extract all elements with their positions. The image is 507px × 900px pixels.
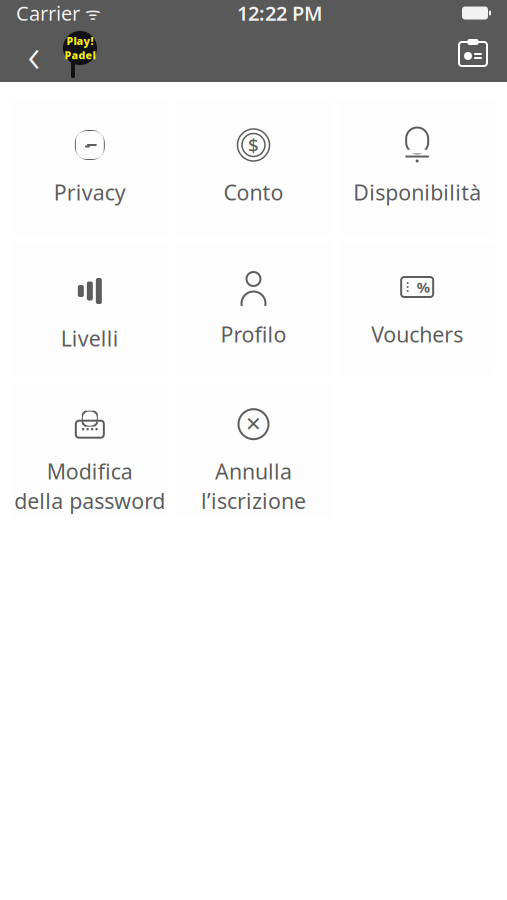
staticText: Play!	[66, 34, 93, 48]
staticText: Conto	[223, 178, 283, 206]
button[interactable]: Modifica	[12, 384, 168, 518]
staticText: Disponibilità	[353, 178, 481, 206]
button[interactable]: Disponibilità	[339, 100, 495, 234]
button[interactable]: Profilo	[176, 242, 331, 376]
button[interactable]: Back	[12, 30, 56, 78]
staticText: $	[248, 133, 259, 157]
staticText: della password	[14, 486, 165, 515]
staticText: ✕	[245, 413, 262, 435]
staticText: Modifica	[47, 457, 133, 485]
staticText: Privacy	[54, 178, 126, 206]
button[interactable]: Livelli	[12, 242, 168, 376]
staticText: %	[417, 277, 430, 297]
staticText: 12:22 PM	[237, 0, 323, 26]
staticText: Padel	[64, 48, 95, 62]
button[interactable]: $	[176, 100, 331, 234]
staticText: ‹	[27, 22, 40, 86]
button[interactable]: Privacy	[12, 100, 168, 234]
staticText: Livelli	[61, 324, 119, 352]
staticText: Carrier	[16, 0, 80, 26]
staticText: Annulla	[215, 457, 292, 485]
staticText: Vouchers	[371, 320, 463, 348]
staticText: l’iscrizione	[201, 486, 306, 515]
button[interactable]: Membership card	[451, 32, 495, 76]
staticText: Profilo	[220, 320, 286, 348]
button[interactable]: ✕	[176, 384, 331, 518]
button[interactable]: %	[339, 242, 495, 376]
staticText: ᯤ	[80, 1, 101, 24]
